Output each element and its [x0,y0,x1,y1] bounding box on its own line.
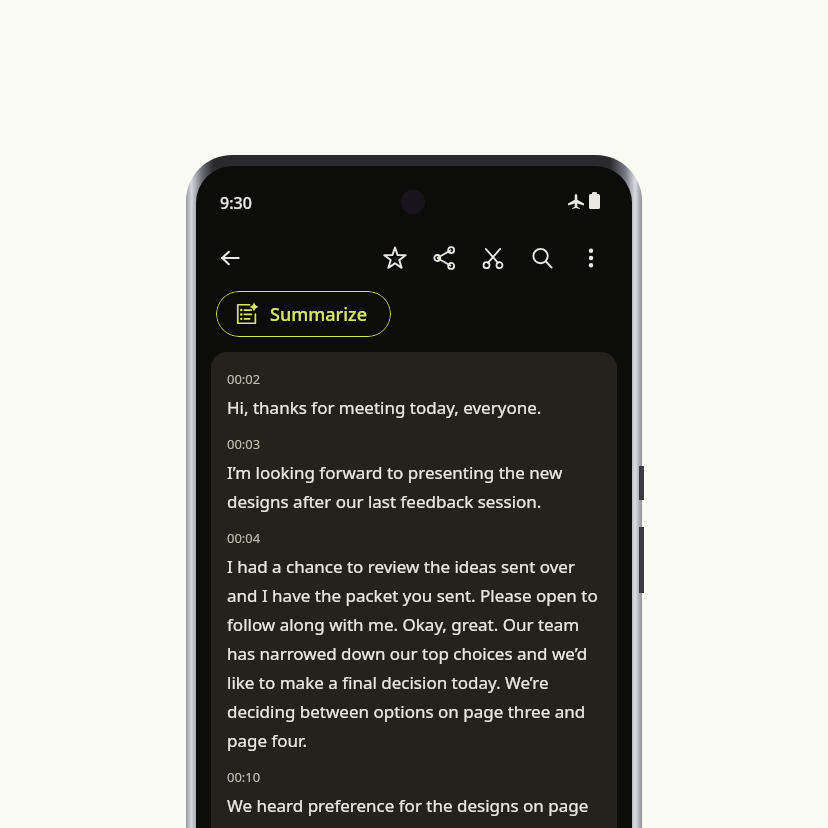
staticText: Summarize [270,302,367,327]
button[interactable]: Share [424,238,464,278]
button[interactable]: Search [522,238,562,278]
staticText: 00:03 [227,435,261,453]
button[interactable]: 00:04 [227,529,603,752]
button[interactable]: 00:10 [227,768,603,817]
button[interactable]: Star [375,238,415,278]
staticText: 9:30 [220,192,252,214]
staticText: I’m looking forward to presenting the ne… [227,461,603,513]
staticText: 00:10 [227,768,261,786]
button[interactable]: 00:03 [227,435,603,513]
button[interactable]: Summarize [216,291,391,337]
button[interactable]: More options [571,238,611,278]
staticText: We heard preference for the designs on p… [227,794,589,817]
staticText: 00:02 [227,370,261,388]
staticText: 00:04 [227,529,261,547]
staticText: I had a chance to review the ideas sent … [227,555,603,752]
staticText: Hi, thanks for meeting today, everyone. [227,396,542,419]
button[interactable]: 00:02 [227,370,603,419]
button[interactable]: Cut [473,238,513,278]
button[interactable]: Back [210,238,250,278]
